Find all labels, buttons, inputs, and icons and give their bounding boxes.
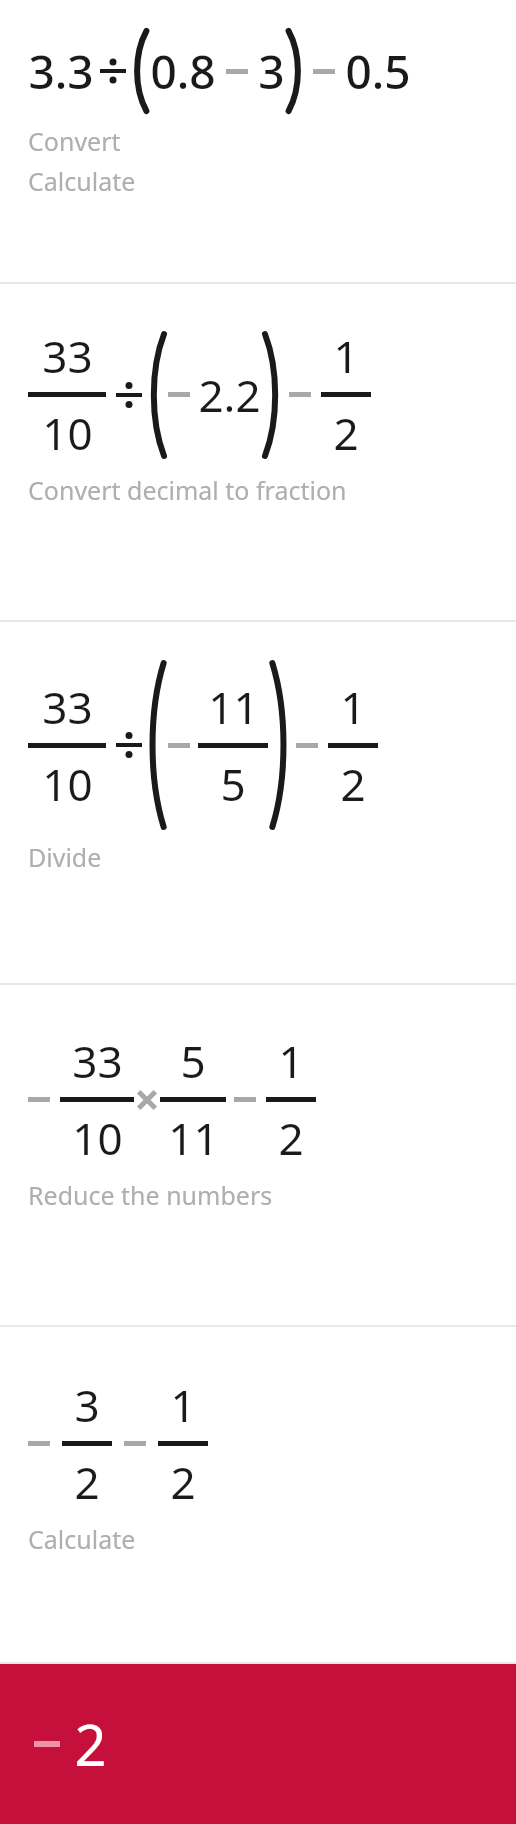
staticText: Divide <box>28 840 102 874</box>
staticText: 2 <box>74 1452 100 1512</box>
staticText: 1 <box>170 1375 196 1435</box>
staticText: 1 <box>333 326 359 386</box>
button[interactable]: 33 <box>0 985 516 1325</box>
button[interactable]: 3 <box>0 1327 516 1662</box>
staticText: 2.2 <box>198 365 261 425</box>
staticText: 10 <box>72 1108 123 1168</box>
staticText: 3 <box>258 40 285 103</box>
staticText: 1 <box>278 1031 304 1091</box>
button[interactable]: 2 <box>0 1664 516 1824</box>
staticText: 5 <box>220 754 246 814</box>
staticText: 2 <box>340 754 366 814</box>
staticText: 11 <box>208 677 259 737</box>
staticText: 2 <box>278 1108 304 1168</box>
button[interactable]: 33 <box>0 284 516 620</box>
staticText: Calculate <box>28 164 136 198</box>
staticText: 2 <box>170 1452 196 1512</box>
staticText: 0.8 <box>150 40 216 103</box>
staticText: 3.3 <box>28 40 94 103</box>
staticText: Convert decimal to fraction <box>28 473 347 507</box>
staticText: 2 <box>74 1706 107 1782</box>
button[interactable]: 3.3 <box>0 0 516 282</box>
staticText: Convert <box>28 124 121 158</box>
staticText: 33 <box>42 326 93 386</box>
button[interactable]: 33 <box>0 622 516 983</box>
staticText: 10 <box>42 754 93 814</box>
staticText: 5 <box>180 1031 206 1091</box>
staticText: Calculate <box>28 1522 136 1556</box>
staticText: 11 <box>168 1108 219 1168</box>
staticText: 0.5 <box>345 40 411 103</box>
staticText: 2 <box>333 403 359 463</box>
staticText: 33 <box>42 677 93 737</box>
staticText: 1 <box>340 677 366 737</box>
staticText: 3 <box>74 1375 100 1435</box>
staticText: 10 <box>42 403 93 463</box>
staticText: 33 <box>72 1031 123 1091</box>
staticText: Reduce the numbers <box>28 1178 273 1212</box>
